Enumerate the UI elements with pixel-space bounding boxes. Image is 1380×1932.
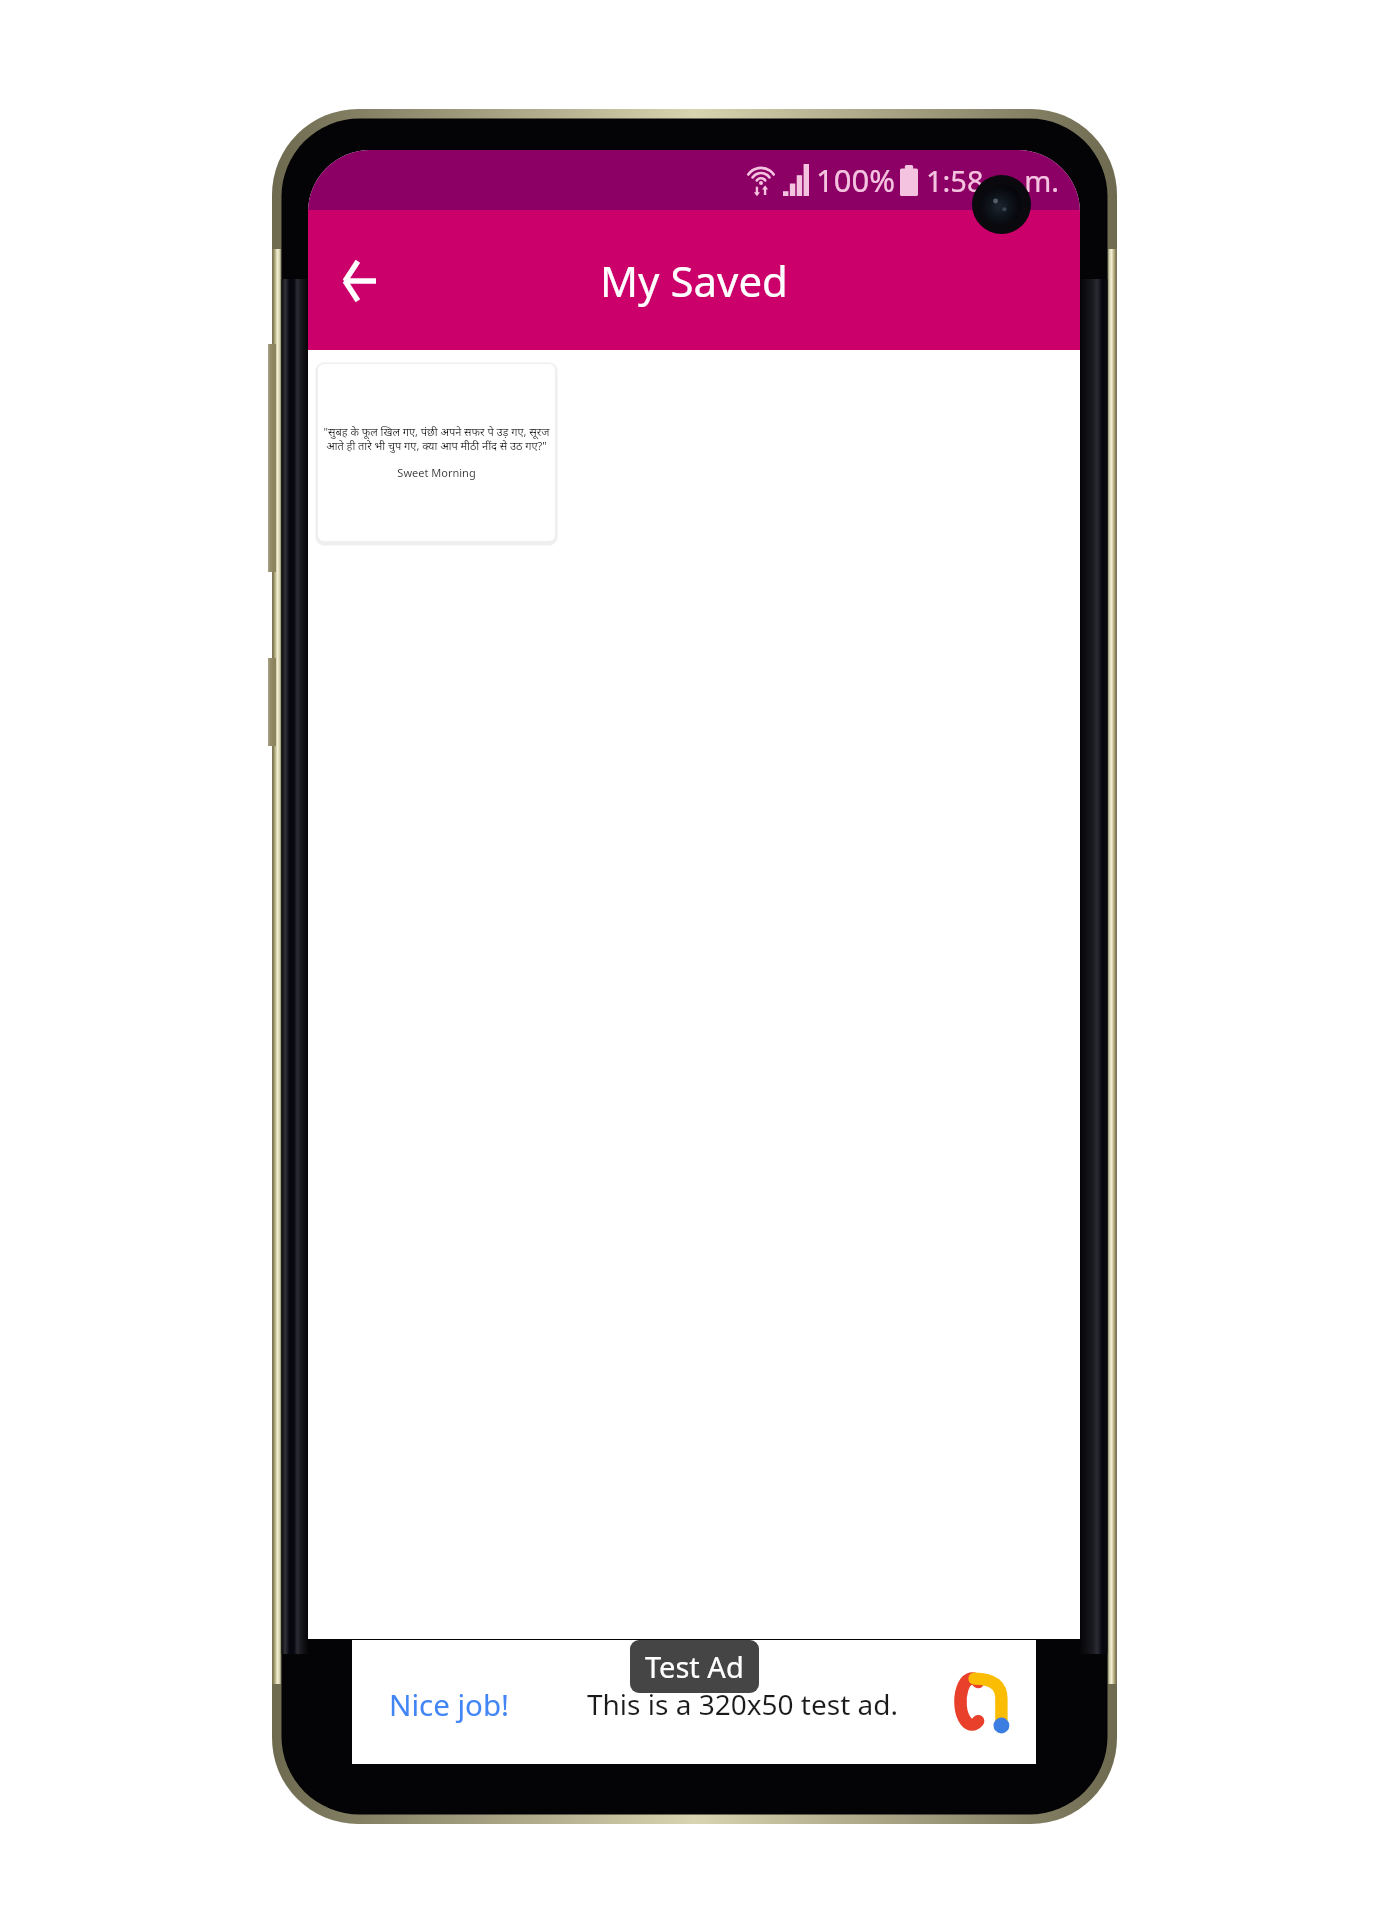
staticText: Test Ad <box>645 1647 744 1686</box>
staticText: My Saved <box>600 252 788 309</box>
button[interactable]: Nice job! <box>352 1640 1036 1764</box>
staticText: 1:58 p. m. <box>926 161 1060 200</box>
staticText: Nice job! <box>389 1684 510 1724</box>
staticText: Sweet Morning <box>397 465 476 480</box>
button[interactable]: Back <box>315 237 403 325</box>
staticText: 100% <box>816 159 895 201</box>
button[interactable]: "सुबह के फूल खिल गए, पंछी अपने सफर पे उड… <box>318 364 555 541</box>
staticText: "सुबह के फूल खिल गए, पंछी अपने सफर पे उड… <box>320 424 553 453</box>
staticText: This is a 320x50 test ad. <box>587 1685 898 1723</box>
other: Front camera <box>972 175 1031 234</box>
